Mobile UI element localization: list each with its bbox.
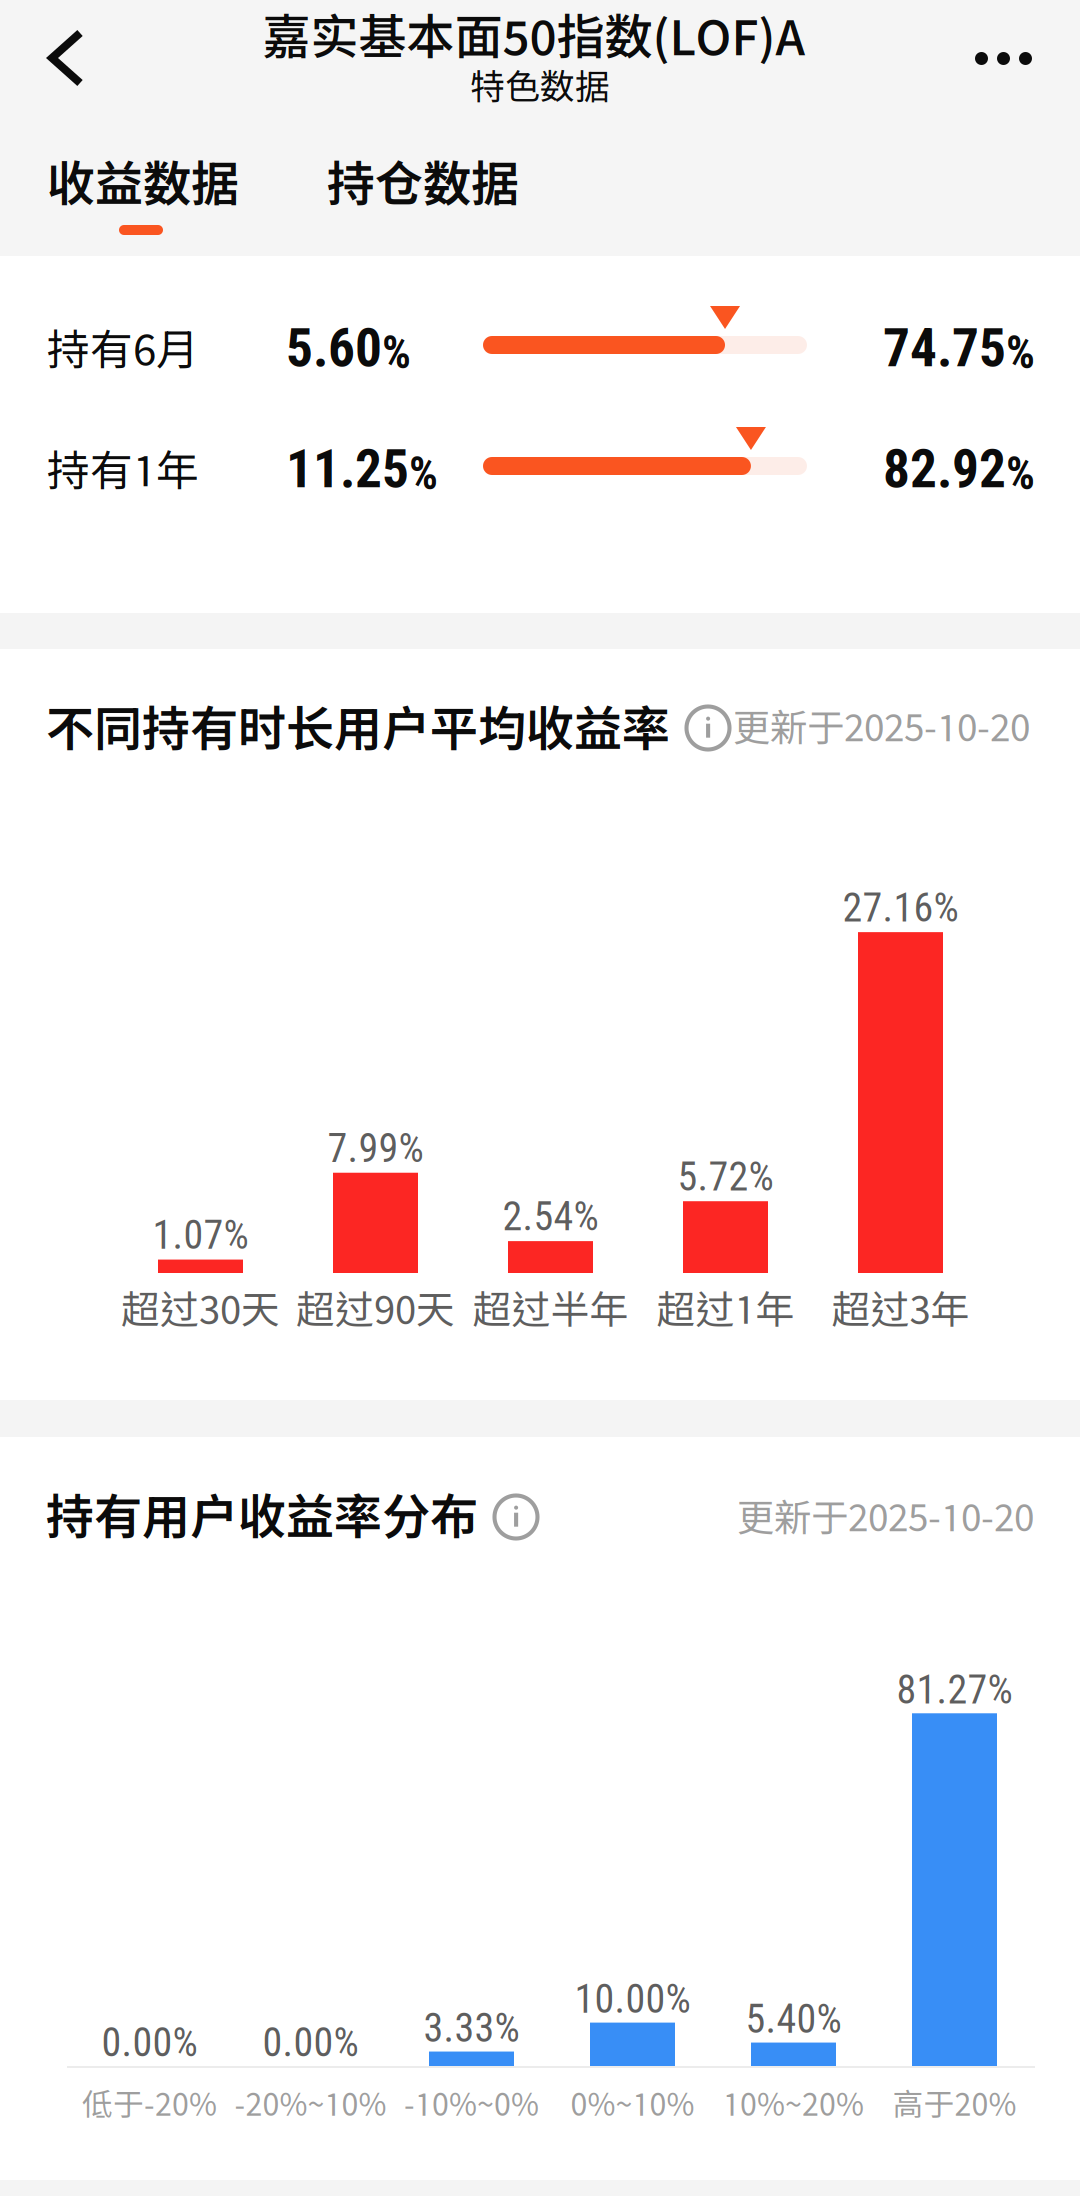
staticText: % bbox=[223, 1212, 248, 1259]
staticText: % bbox=[748, 1153, 773, 1200]
staticText: 超过半年 bbox=[472, 1286, 628, 1332]
staticText: 3.33 bbox=[423, 2005, 494, 2052]
staticText: % bbox=[494, 2005, 519, 2052]
button[interactable]: About average return by holding period bbox=[676, 696, 740, 760]
button[interactable]: 收益数据 bbox=[47, 128, 302, 252]
staticText: 持有1年 bbox=[47, 445, 199, 495]
staticText: -10%~0% bbox=[404, 2086, 539, 2122]
button[interactable]: 持仓数据 bbox=[327, 128, 582, 252]
staticText: 超过3年 bbox=[831, 1286, 969, 1332]
staticText: 低于-20% bbox=[82, 2086, 217, 2122]
staticText: 5.60 bbox=[286, 317, 382, 379]
staticText: 74.75 bbox=[883, 317, 1006, 379]
button[interactable]: About holder return distribution bbox=[484, 1485, 548, 1549]
staticText: 0.00 bbox=[262, 2019, 333, 2066]
staticText: 特色数据 bbox=[470, 65, 610, 106]
staticText: 1.07 bbox=[152, 1212, 223, 1259]
staticText: 超过1年 bbox=[656, 1286, 794, 1332]
staticText: -20%~10% bbox=[234, 2086, 386, 2122]
button[interactable]: More options bbox=[940, 0, 1080, 122]
staticText: % bbox=[398, 1125, 423, 1172]
staticText: 27.16 bbox=[842, 884, 933, 931]
staticText: % bbox=[816, 1996, 841, 2043]
staticText: 不同持有时长用户平均收益率 bbox=[46, 700, 670, 756]
staticText: 持有用户收益率分布 bbox=[46, 1488, 478, 1544]
staticText: 超过30天 bbox=[121, 1286, 280, 1332]
staticText: 0.00 bbox=[101, 2019, 172, 2066]
staticText: % bbox=[987, 1666, 1012, 1713]
staticText: 持有6月 bbox=[47, 324, 199, 374]
staticText: 5.72 bbox=[677, 1153, 748, 1200]
button[interactable]: Back bbox=[0, 0, 132, 122]
staticText: 2.54 bbox=[502, 1193, 573, 1240]
staticText: 11.25 bbox=[286, 438, 409, 500]
staticText: 更新于2025-10-20 bbox=[733, 705, 1030, 749]
staticText: % bbox=[382, 326, 411, 379]
staticText: % bbox=[1006, 447, 1035, 500]
staticText: 5.40 bbox=[745, 1996, 816, 2043]
staticText: 持仓数据 bbox=[327, 155, 519, 211]
staticText: 超过90天 bbox=[296, 1286, 455, 1332]
staticText: 收益数据 bbox=[47, 155, 239, 211]
staticText: % bbox=[665, 1976, 690, 2023]
staticText: 0%~10% bbox=[570, 2086, 694, 2122]
staticText: 更新于2025-10-20 bbox=[737, 1495, 1034, 1539]
staticText: % bbox=[933, 884, 958, 931]
staticText: 高于20% bbox=[892, 2086, 1016, 2122]
staticText: % bbox=[409, 447, 438, 500]
staticText: 81.27 bbox=[896, 1666, 987, 1713]
staticText: 82.92 bbox=[883, 438, 1006, 500]
staticText: % bbox=[573, 1193, 598, 1240]
staticText: 10.00 bbox=[574, 1976, 665, 2023]
staticText: 10%~20% bbox=[723, 2086, 864, 2122]
staticText: 嘉实基本面50指数(LOF)A bbox=[262, 8, 805, 64]
staticText: 7.99 bbox=[327, 1125, 398, 1172]
staticText: % bbox=[172, 2019, 197, 2066]
staticText: % bbox=[1006, 326, 1035, 379]
staticText: % bbox=[333, 2019, 358, 2066]
